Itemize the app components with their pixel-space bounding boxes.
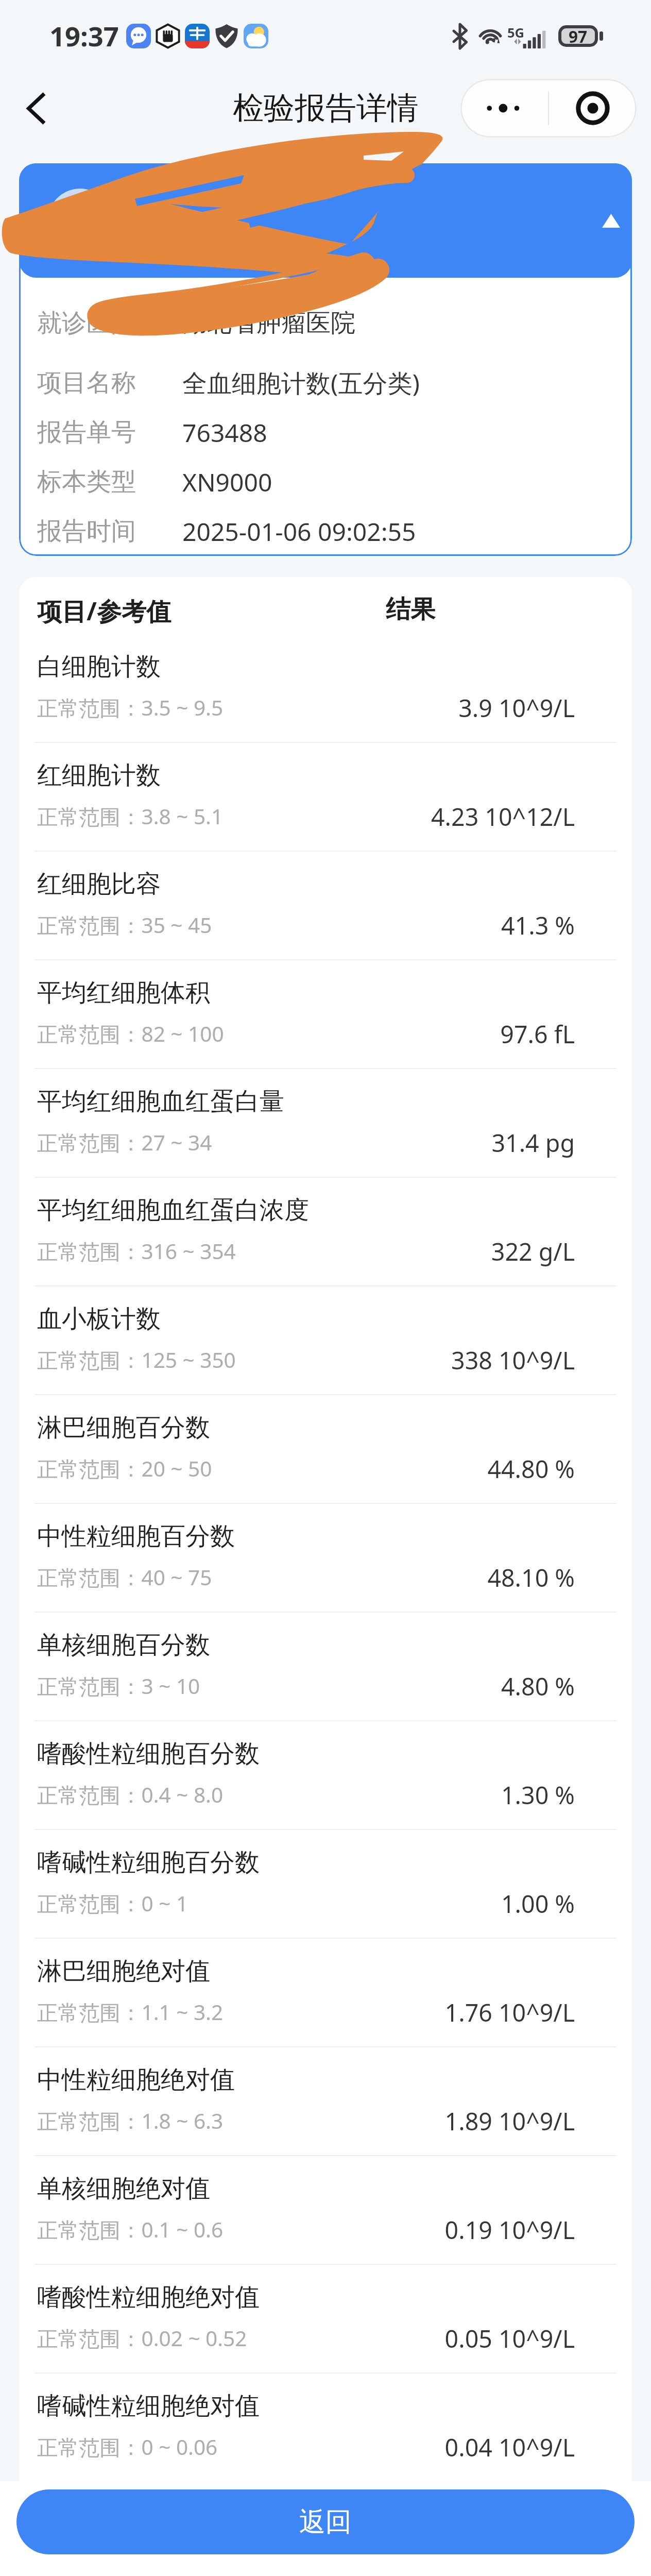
- button[interactable]: 平均红细胞体积: [19, 959, 632, 1068]
- staticText: 97: [569, 25, 588, 47]
- button[interactable]: 中性粒细胞百分数: [19, 1503, 632, 1612]
- staticText: 标本类型: [37, 466, 182, 497]
- staticText: 正常范围：82 ~ 100: [37, 1020, 224, 1048]
- staticText: 2025-01-06 09:02:55: [182, 515, 416, 548]
- button[interactable]: 白细胞计数: [19, 633, 632, 742]
- staticText: 31.4 pg: [218, 1126, 575, 1159]
- staticText: 10.1 fL: [253, 2533, 575, 2565]
- button[interactable]: 嗜酸性粒细胞绝对值: [19, 2264, 632, 2372]
- button[interactable]: 淋巴细胞百分数: [19, 1394, 632, 1503]
- staticText: 正常范围：1.1 ~ 3.2: [37, 1998, 224, 2026]
- staticText: 正常范围：0.02 ~ 0.52: [37, 2324, 247, 2352]
- staticText: 平均红细胞体积: [37, 977, 210, 1008]
- staticText: 正常范围：0 ~ 1: [37, 1889, 189, 1918]
- staticText: 正常范围：3.5 ~ 9.5: [37, 693, 224, 722]
- staticText: 0.04 10^9/L: [224, 2431, 575, 2463]
- staticText: 项目名称: [37, 367, 182, 398]
- staticText: 正常范围：15.3 ~ 20.5: [37, 2535, 247, 2563]
- staticText: 嗜碱性粒细胞百分数: [37, 1847, 260, 1878]
- staticText: 4.23 10^12/L: [230, 800, 575, 833]
- button[interactable]: 平均红细胞血红蛋白量: [19, 1068, 632, 1177]
- staticText: 正常范围：27 ~ 34: [37, 1128, 212, 1157]
- staticText: 嗜酸性粒细胞百分数: [37, 1738, 260, 1769]
- staticText: 1.89 10^9/L: [230, 2105, 575, 2137]
- staticText: 19:37: [49, 18, 119, 55]
- staticText: 报告时间: [37, 516, 182, 547]
- staticText: 正常范围：316 ~ 354: [37, 1237, 236, 1265]
- button[interactable]: 嗜碱性粒细胞百分数: [19, 1829, 632, 1938]
- button[interactable]: 红细胞计数: [19, 742, 632, 851]
- staticText: 正常范围：0 ~ 0.06: [37, 2433, 218, 2461]
- staticText: 正常范围：3 ~ 10: [37, 1672, 200, 1700]
- button[interactable]: 单核细胞百分数: [19, 1612, 632, 1720]
- staticText: 0.19 10^9/L: [230, 2213, 575, 2246]
- staticText: 项目/参考值: [37, 594, 171, 628]
- staticText: 48.10 %: [218, 1561, 575, 1594]
- staticText: 平均红细胞血红蛋白量: [37, 1086, 284, 1117]
- staticText: 中性粒细胞绝对值: [37, 2064, 235, 2095]
- staticText: 就诊医院: [37, 308, 182, 338]
- staticText: 97.6 fL: [230, 1018, 575, 1050]
- button[interactable]: Back: [2, 74, 70, 142]
- button[interactable]: 红细胞比容: [19, 851, 632, 959]
- staticText: 淋巴细胞百分数: [37, 1412, 210, 1443]
- staticText: 正常范围：1.8 ~ 6.3: [37, 2107, 224, 2135]
- staticText: 正常范围：0.1 ~ 0.6: [37, 2215, 224, 2244]
- staticText: 结果: [386, 594, 435, 625]
- staticText: 338 10^9/L: [242, 1344, 575, 1376]
- staticText: 中性粒细胞百分数: [37, 1521, 235, 1552]
- staticText: 返回: [299, 2505, 352, 2538]
- staticText: 嗜酸性粒细胞绝对值: [37, 2282, 260, 2313]
- staticText: 1.30 %: [230, 1778, 575, 1811]
- staticText: 正常范围：3.8 ~ 5.1: [37, 802, 224, 831]
- button[interactable]: 血小板体积分布宽度: [19, 2481, 632, 2576]
- staticText: 763488: [182, 416, 267, 449]
- staticText: 1.00 %: [195, 1887, 575, 1920]
- button[interactable]: 嗜酸性粒细胞百分数: [19, 1720, 632, 1829]
- button[interactable]: 血小板计数: [19, 1285, 632, 1394]
- button[interactable]: More: [460, 79, 548, 138]
- staticText: 嗜碱性粒细胞绝对值: [37, 2391, 260, 2421]
- staticText: 0.05 10^9/L: [253, 2322, 575, 2354]
- staticText: 41.3 %: [218, 909, 575, 941]
- staticText: 血小板计数: [37, 1303, 161, 1334]
- staticText: 正常范围：35 ~ 45: [37, 911, 212, 939]
- staticText: 红细胞比容: [37, 869, 161, 900]
- staticText: 44.80 %: [218, 1452, 575, 1485]
- button[interactable]: 淋巴细胞绝对值: [19, 1938, 632, 2046]
- staticText: 4.80 %: [207, 1670, 575, 1702]
- button[interactable]: 返回: [16, 2489, 635, 2554]
- button[interactable]: Close: [549, 79, 637, 138]
- staticText: 正常范围：0.4 ~ 8.0: [37, 1781, 224, 1809]
- staticText: 平均红细胞血红蛋白浓度: [37, 1195, 309, 1226]
- staticText: 湖北省肿瘤医院: [182, 308, 355, 338]
- staticText: 322 g/L: [242, 1235, 575, 1267]
- staticText: 单核细胞绝对值: [37, 2173, 210, 2204]
- staticText: 1.76 10^9/L: [230, 1996, 575, 2028]
- staticText: 单核细胞百分数: [37, 1630, 210, 1660]
- staticText: 报告单号: [37, 417, 182, 448]
- staticText: 正常范围：125 ~ 350: [37, 1346, 236, 1374]
- staticText: 正常范围：40 ~ 75: [37, 1563, 212, 1591]
- staticText: 5G: [507, 24, 525, 42]
- staticText: 红细胞计数: [37, 760, 161, 791]
- staticText: 3.9 10^9/L: [230, 691, 575, 724]
- staticText: 检验报告详情: [233, 89, 418, 128]
- button[interactable]: 中性粒细胞绝对值: [19, 2046, 632, 2155]
- staticText: 淋巴细胞绝对值: [37, 1956, 210, 1987]
- button[interactable]: 单核细胞绝对值: [19, 2155, 632, 2264]
- staticText: 白细胞计数: [37, 651, 161, 682]
- staticText: 全血细胞计数(五分类): [182, 366, 420, 400]
- button[interactable]: 嗜碱性粒细胞绝对值: [19, 2372, 632, 2481]
- button[interactable]: 平均红细胞血红蛋白浓度: [19, 1177, 632, 1285]
- staticText: 正常范围：20 ~ 50: [37, 1454, 212, 1483]
- staticText: XN9000: [182, 465, 272, 499]
